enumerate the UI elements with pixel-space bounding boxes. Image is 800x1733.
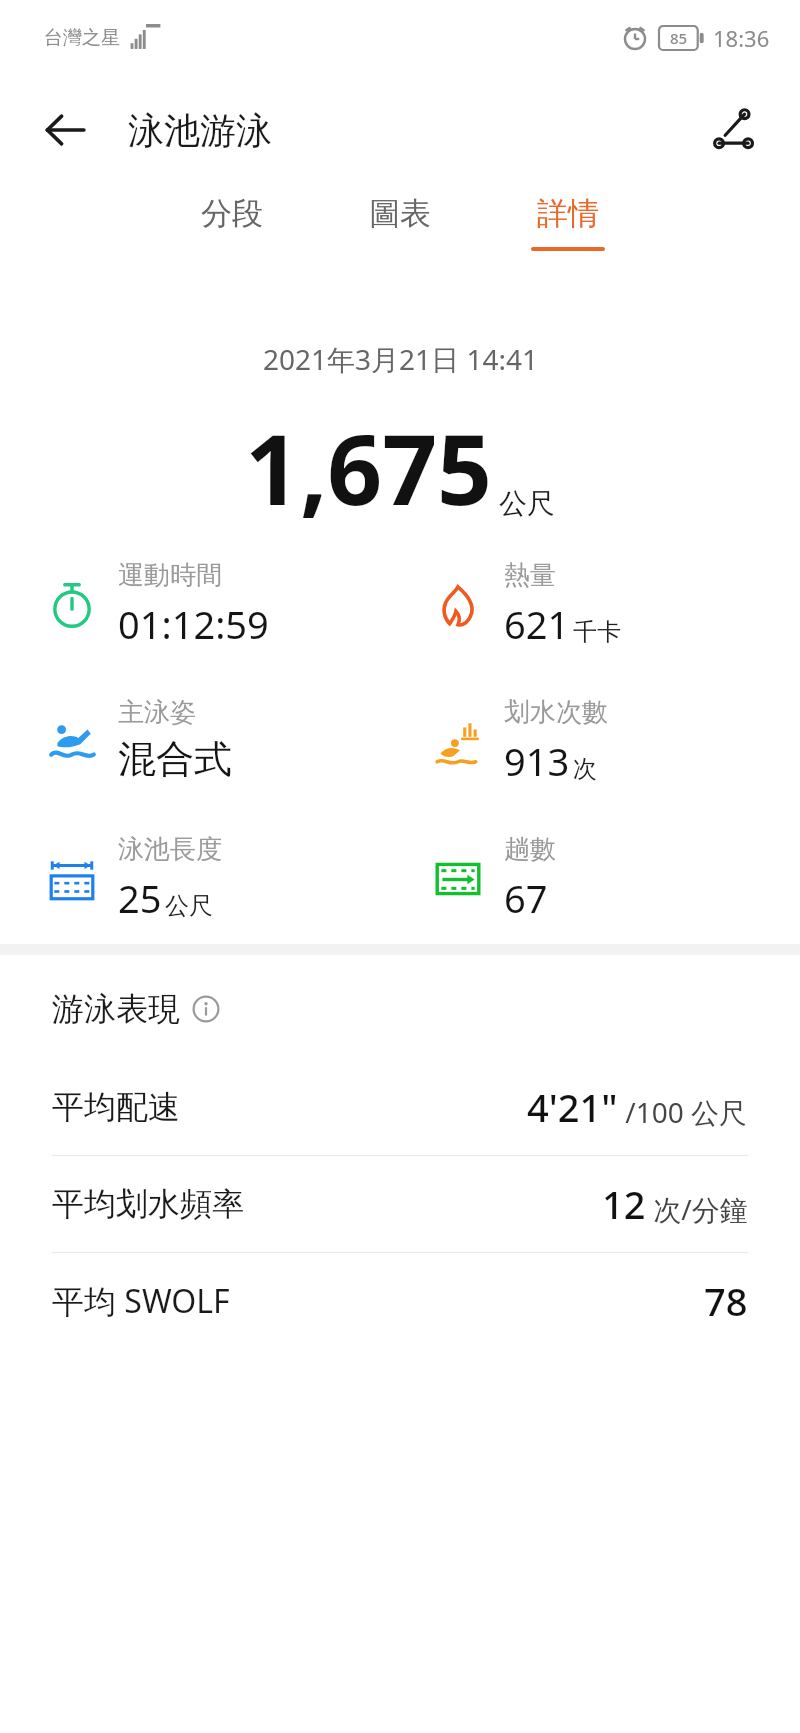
button[interactable]: 游泳表現 [52,989,800,1029]
staticText: 泳池長度 [118,833,222,866]
staticText: 台灣之星 [44,26,120,50]
staticText: 泳池游泳 [128,108,272,153]
button[interactable]: 熱量 [430,559,621,650]
staticText: 平均配速 [52,1087,527,1127]
staticText: 平均 SWOLF [52,1279,704,1323]
button[interactable]: 詳情 [508,184,628,251]
staticText: 公尺 [499,486,555,521]
staticText: 18:36 [713,23,770,53]
button[interactable]: 划水次數 [430,696,608,787]
button[interactable]: Back [34,99,96,161]
staticText: 運動時間 [118,559,222,592]
staticText: 78 [704,1275,748,1327]
button[interactable]: 平均配速 [0,1059,800,1155]
staticText: 平均划水頻率 [52,1184,602,1224]
button[interactable]: 趟數 [430,833,556,924]
staticText: 01:12:59 [118,598,269,650]
staticText: 混合式 [118,735,232,783]
staticText: 85 [670,28,688,48]
button[interactable]: 平均划水頻率 [0,1156,800,1252]
staticText: 圖表 [369,194,431,233]
staticText: 67 [504,872,548,924]
button[interactable]: Share [702,98,766,162]
staticText: 2021年3月21日 14:41 [263,340,538,378]
button[interactable]: 圖表 [340,184,460,247]
staticText: 4'21" [527,1081,618,1133]
button[interactable]: 泳池長度 [44,833,222,924]
staticText: 熱量 [504,559,556,592]
staticText: 趟數 [504,833,556,866]
staticText: 621 [504,598,570,650]
button[interactable]: 平均 SWOLF [0,1253,800,1349]
button[interactable]: 運動時間 [44,559,269,650]
button[interactable]: 分段 [172,184,292,247]
staticText: 公尺 [165,891,213,921]
staticText: 千卡 [573,617,621,647]
staticText: 1,675 [245,402,493,533]
staticText: /100 公尺 [618,1093,748,1131]
staticText: 次/分鐘 [646,1190,748,1228]
staticText: 913 [504,735,570,787]
staticText: 25 [118,872,162,924]
other: Info [192,995,220,1023]
staticText: 詳情 [537,194,599,233]
staticText: 次 [573,754,597,784]
staticText: 主泳姿 [118,696,196,729]
button[interactable]: 主泳姿 [44,696,232,783]
staticText: 12 [602,1178,646,1230]
staticText: 划水次數 [504,696,608,729]
staticText: 分段 [201,194,263,233]
staticText: 游泳表現 [52,989,180,1029]
